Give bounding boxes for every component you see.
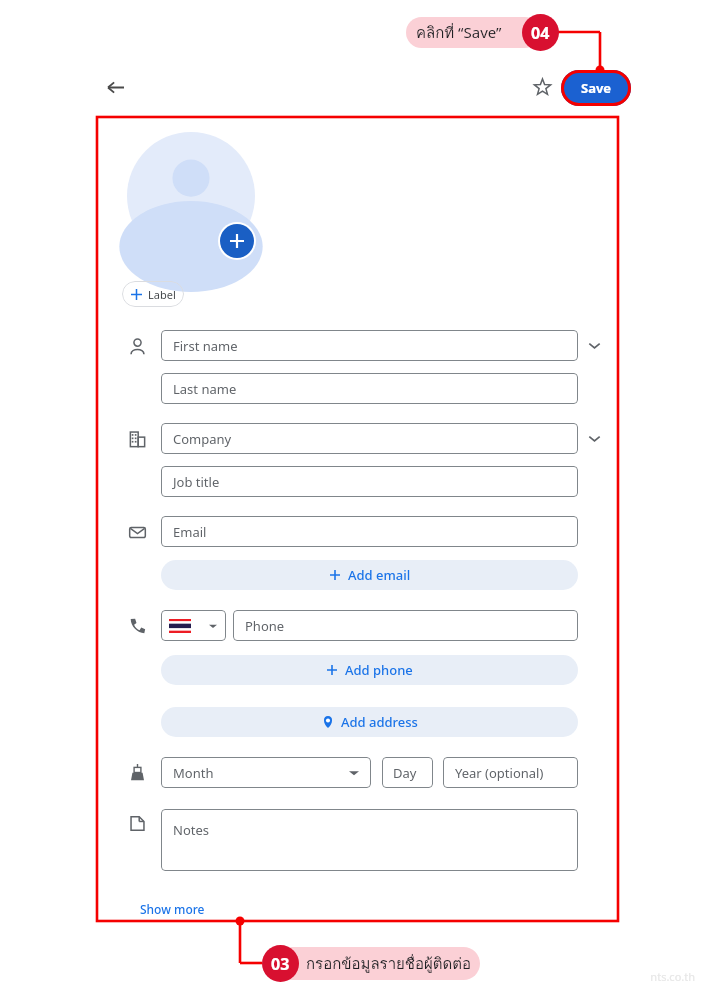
staticText: 04 — [531, 22, 550, 44]
staticText: กรอกข้อมูลรายชื่อผู้ติดต่อ — [306, 952, 472, 976]
staticText: Phone — [245, 617, 285, 635]
button[interactable]: Label — [122, 281, 184, 307]
staticText: nts.co.th — [650, 969, 695, 984]
staticText: Year (optional) — [455, 764, 544, 782]
staticText: Add phone — [345, 661, 413, 679]
staticText: Notes — [173, 821, 209, 839]
button[interactable]: Year (optional) — [443, 757, 578, 788]
staticText: Show more — [140, 901, 205, 917]
button[interactable]: Add to favorites — [526, 71, 558, 103]
button[interactable]: Back — [99, 71, 131, 103]
staticText: Last name — [173, 380, 237, 398]
button[interactable]: Day — [382, 757, 433, 788]
button[interactable]: Add phone — [161, 655, 578, 685]
button[interactable]: Phone — [233, 610, 578, 641]
button[interactable]: Last name — [161, 373, 578, 404]
staticText: 03 — [271, 953, 290, 975]
button[interactable]: Company — [161, 423, 578, 454]
button[interactable]: Add address — [161, 707, 578, 737]
button[interactable]: Show more — [140, 901, 205, 917]
button[interactable]: Expand — [580, 424, 608, 452]
staticText: Day — [393, 764, 417, 782]
button[interactable]: Add email — [161, 560, 578, 590]
staticText: Add address — [341, 713, 418, 731]
button[interactable]: Job title — [161, 466, 578, 497]
button[interactable]: Add photo — [220, 224, 254, 258]
staticText: คลิกที่ “Save” — [416, 21, 502, 45]
staticText: Company — [173, 430, 232, 448]
button[interactable]: Notes — [161, 809, 578, 871]
staticText: First name — [173, 337, 238, 355]
button[interactable]: Select country code — [161, 610, 226, 641]
staticText: Label — [148, 287, 176, 302]
button[interactable]: First name — [161, 330, 578, 361]
button[interactable]: Email — [161, 516, 578, 547]
staticText: Save — [581, 79, 612, 97]
staticText: Job title — [173, 473, 220, 491]
button[interactable]: Month — [161, 757, 371, 788]
button[interactable]: Expand — [580, 331, 608, 359]
staticText: Email — [173, 523, 207, 541]
button[interactable]: Save — [561, 70, 631, 106]
staticText: Add email — [348, 566, 411, 584]
staticText: Month — [173, 764, 214, 782]
